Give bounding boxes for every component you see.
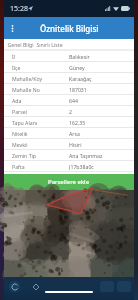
button[interactable]: Menü	[4, 20, 21, 37]
staticText: Nitelik	[12, 130, 28, 137]
button[interactable]: Katmanlar	[30, 281, 41, 292]
button[interactable]: İl	[4, 51, 134, 61]
button[interactable]: Yenile	[9, 281, 20, 292]
staticText: Genel Bilgi	[7, 41, 34, 48]
staticText: Tapu Alanı	[12, 119, 38, 126]
staticText: Mahalle No	[12, 86, 40, 93]
button[interactable]: İlçe	[4, 62, 134, 72]
staticText: Hisiri	[69, 141, 82, 148]
staticText: Karaağaç	[69, 75, 92, 82]
staticText: 162.35	[69, 119, 86, 126]
staticText: 15:28	[10, 4, 28, 14]
staticText: Zemin Tip	[12, 152, 37, 159]
button[interactable]: Tapu Alanı	[4, 117, 134, 127]
staticText: Parsellere ekle	[48, 178, 90, 186]
staticText: Mevkii	[12, 141, 28, 148]
staticText: J17b38a0c	[69, 163, 94, 170]
staticText: Güney	[69, 64, 85, 71]
button[interactable]: Pafta	[4, 161, 134, 171]
button[interactable]: Mevkii	[4, 139, 134, 149]
staticText: Ada	[12, 97, 22, 104]
staticText: Parsel	[12, 108, 27, 115]
button[interactable]: Ada	[4, 95, 134, 105]
button[interactable]: Parsel	[4, 106, 134, 116]
staticText: Sınırlı Liste	[36, 41, 63, 48]
button[interactable]: Nitelik	[4, 128, 134, 138]
staticText: Mahalle/Köy	[12, 75, 43, 82]
staticText: Öznitelik Bilgisi	[40, 23, 99, 34]
staticText: 644	[69, 97, 78, 104]
button[interactable]: Genel Bilgi	[6, 39, 35, 49]
staticText: Ana Taşınmaz	[69, 152, 103, 159]
staticText: Balıkesir	[69, 53, 90, 60]
staticText: Arsa	[69, 130, 80, 137]
button[interactable]: Zemin Tip	[4, 150, 134, 160]
button[interactable]: Mahalle No	[4, 84, 134, 94]
button[interactable]: Sınırlı Liste	[35, 39, 64, 49]
staticText: 2	[69, 108, 72, 115]
staticText: Pafta	[12, 163, 25, 170]
button[interactable]: Parsellere ekle	[4, 174, 134, 190]
staticText: İl	[12, 53, 16, 60]
button[interactable]: Mahalle/Köy	[4, 73, 134, 83]
staticText: İlçe	[12, 64, 21, 71]
staticText: 187031	[69, 86, 87, 93]
